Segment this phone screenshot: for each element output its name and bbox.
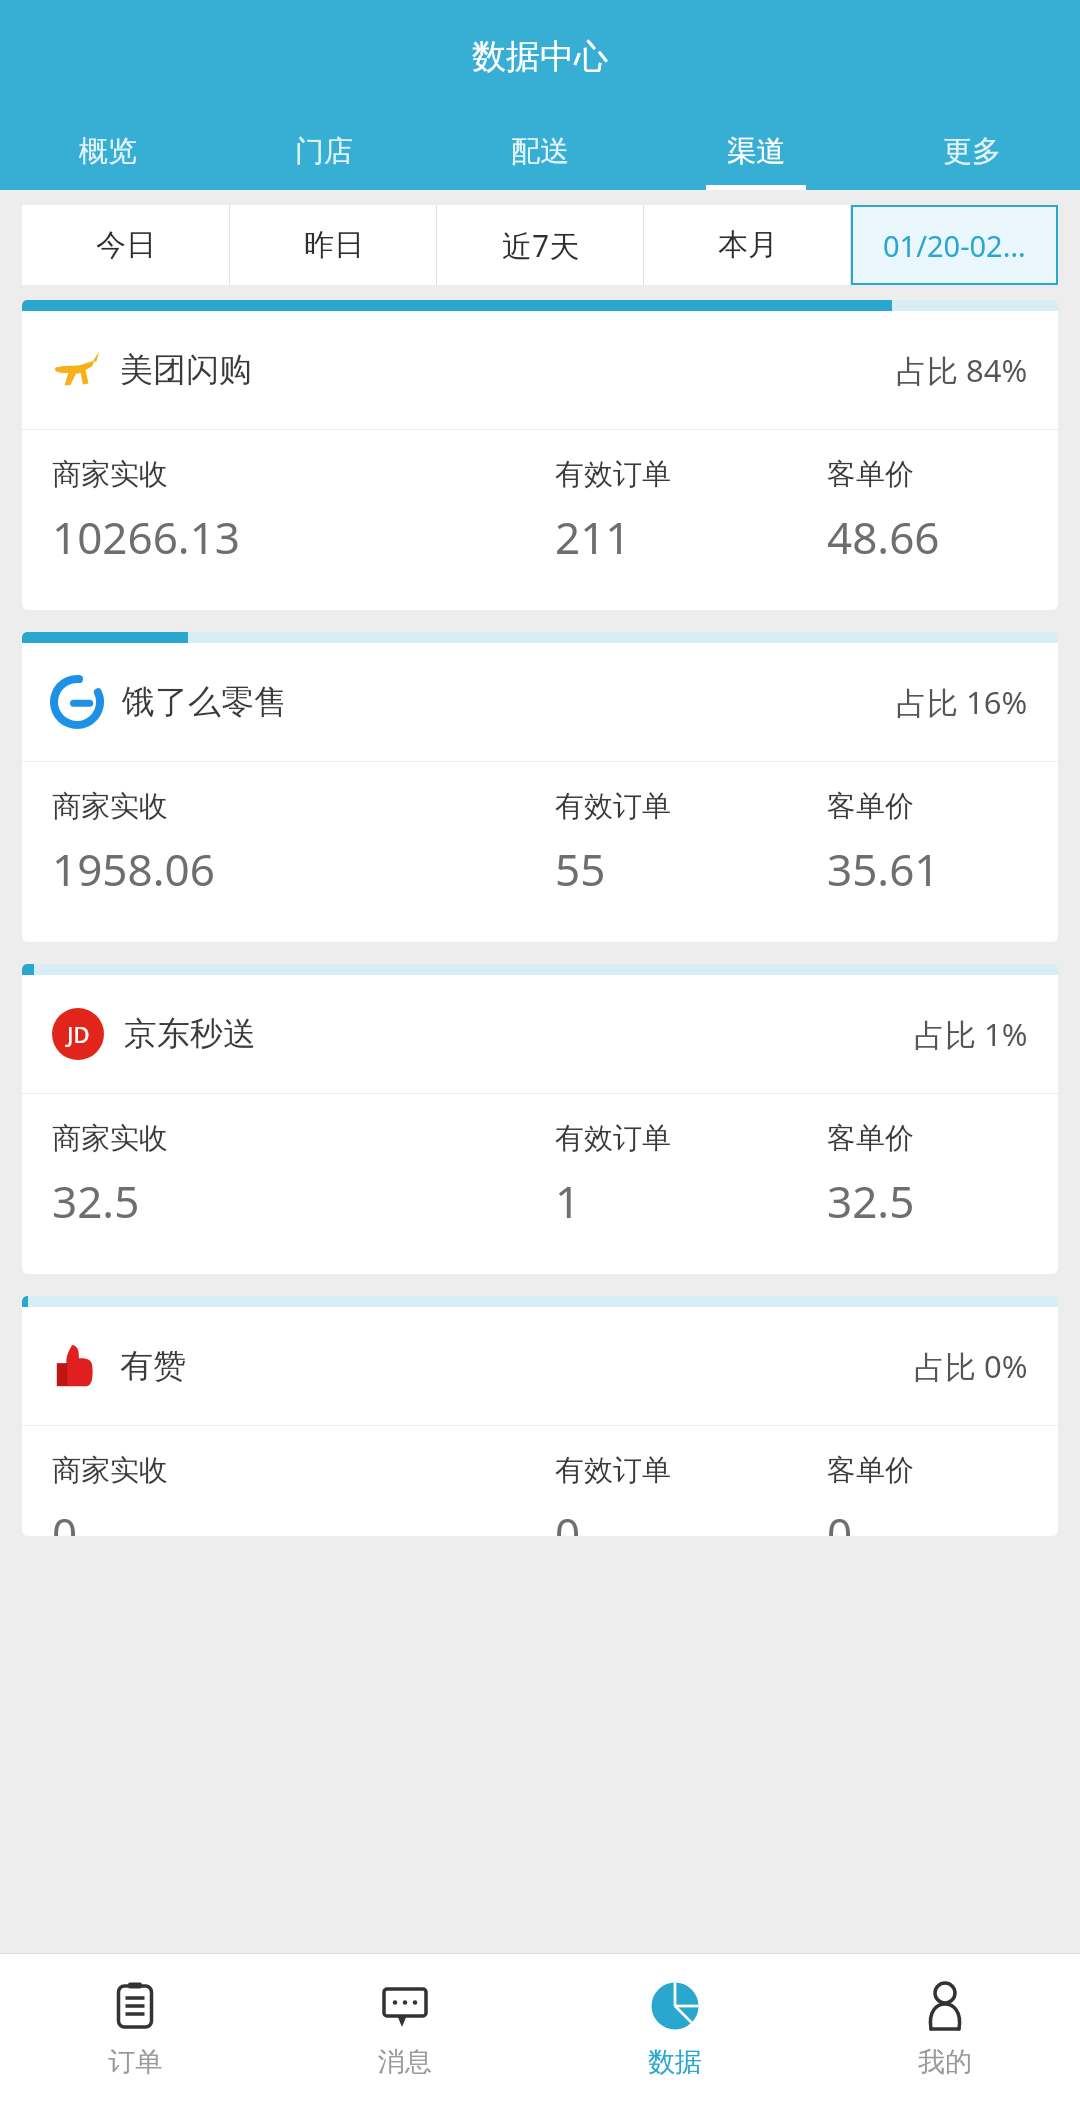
staticText: 京东秒送 [124, 1013, 256, 1055]
staticText: 1 [555, 1171, 581, 1231]
staticText: 近7天 [502, 225, 580, 266]
staticText: 配送 [511, 133, 569, 170]
staticText: 35.61 [827, 839, 940, 899]
button[interactable]: 我的 [810, 1954, 1080, 2104]
staticText: 我的 [918, 2045, 972, 2079]
staticText: 本月 [718, 226, 778, 264]
staticText: 占比 0% [914, 1345, 1028, 1387]
staticText: 门店 [295, 133, 353, 170]
staticText: 更多 [943, 133, 1001, 170]
staticText: 客单价 [827, 788, 914, 825]
staticText: 01/20-02… [883, 226, 1026, 265]
staticText: JD [67, 1019, 90, 1049]
staticText: 0 [827, 1503, 853, 1536]
staticText: 0 [555, 1503, 581, 1536]
staticText: 消息 [378, 2045, 432, 2079]
staticText: 32.5 [52, 1171, 140, 1231]
button[interactable]: 更多 [864, 112, 1080, 190]
staticText: 32.5 [827, 1171, 915, 1231]
button[interactable]: 昨日 [230, 205, 437, 285]
button[interactable]: 概览 [0, 112, 216, 190]
staticText: 占比 84% [896, 349, 1028, 391]
staticText: 商家实收 [52, 1120, 168, 1157]
button[interactable]: 近7天 [437, 205, 644, 285]
staticText: 饿了么零售 [122, 681, 287, 723]
staticText: 有效订单 [555, 456, 671, 493]
button[interactable]: 有赞 [22, 1307, 1058, 1536]
staticText: 渠道 [727, 133, 785, 170]
button[interactable]: JD [22, 975, 1058, 1274]
button[interactable]: 消息 [270, 1954, 540, 2104]
staticText: 0 [52, 1503, 78, 1536]
staticText: 55 [555, 839, 606, 899]
staticText: 有效订单 [555, 1120, 671, 1157]
staticText: 占比 1% [914, 1013, 1028, 1055]
staticText: 占比 16% [896, 681, 1028, 723]
staticText: 10266.13 [52, 507, 240, 567]
button[interactable]: 今日 [22, 205, 230, 285]
staticText: 客单价 [827, 1120, 914, 1157]
button[interactable]: 订单 [0, 1954, 270, 2104]
button[interactable]: 门店 [216, 112, 432, 190]
staticText: 商家实收 [52, 456, 168, 493]
staticText: 有效订单 [555, 1452, 671, 1489]
staticText: 数据中心 [472, 35, 608, 78]
button[interactable]: 本月 [644, 205, 851, 285]
staticText: 有效订单 [555, 788, 671, 825]
staticText: 商家实收 [52, 788, 168, 825]
button[interactable]: 01/20-02… [851, 205, 1058, 285]
staticText: 商家实收 [52, 1452, 168, 1489]
button[interactable]: 渠道 [648, 112, 864, 190]
staticText: 美团闪购 [120, 349, 252, 391]
staticText: 概览 [79, 133, 137, 170]
staticText: 今日 [96, 226, 156, 264]
button[interactable]: 数据 [540, 1954, 810, 2104]
staticText: 客单价 [827, 456, 914, 493]
staticText: 昨日 [304, 226, 364, 264]
staticText: 客单价 [827, 1452, 914, 1489]
staticText: 211 [555, 507, 631, 567]
button[interactable]: 美团闪购 [22, 311, 1058, 610]
staticText: 数据 [648, 2045, 702, 2079]
staticText: 有赞 [120, 1345, 186, 1387]
button[interactable]: 饿了么零售 [22, 643, 1058, 942]
button[interactable]: 配送 [432, 112, 648, 190]
staticText: 48.66 [827, 507, 940, 567]
staticText: 订单 [108, 2045, 162, 2079]
staticText: 1958.06 [52, 839, 215, 899]
